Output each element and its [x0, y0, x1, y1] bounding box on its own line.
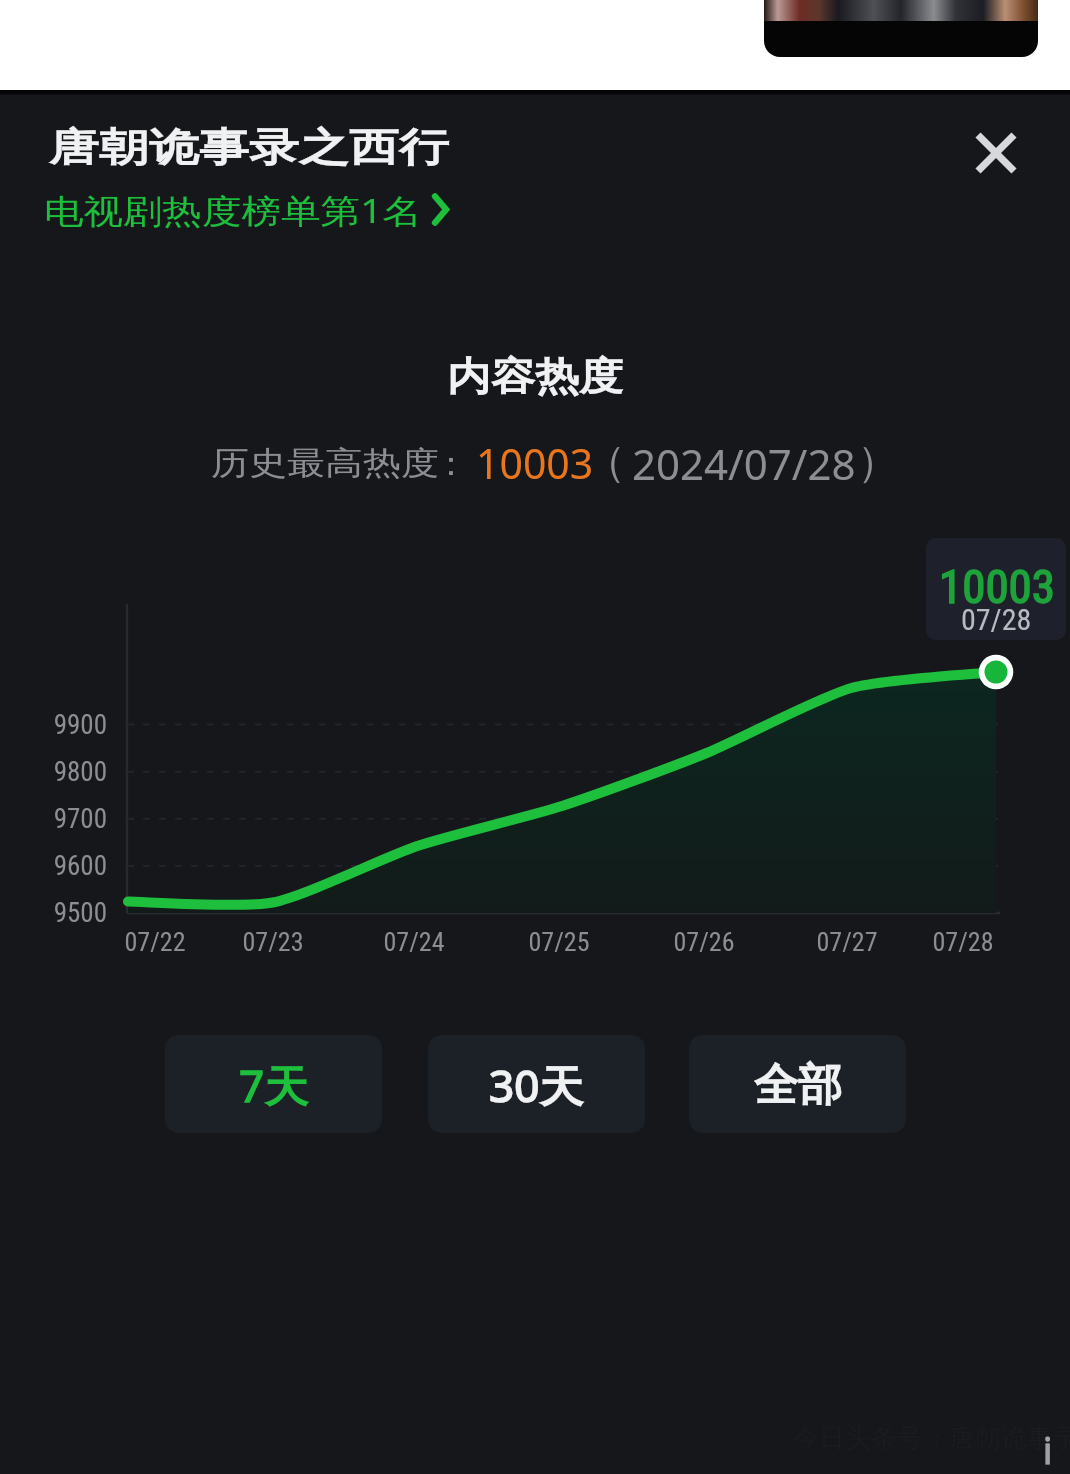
staticText: 7天 — [239, 1055, 309, 1115]
staticText: 07/23 — [213, 927, 333, 957]
staticText: 今日头条号：唐朝诡事录官方 — [793, 1422, 1070, 1455]
staticText: 9800 — [7, 756, 107, 788]
staticText: 历史最高热度 — [211, 443, 439, 484]
staticText: 07/24 — [354, 927, 474, 957]
staticText: 内容热度 — [447, 353, 623, 402]
staticText: 2024/07/28 — [632, 435, 856, 492]
button[interactable]: 全部 — [689, 1035, 906, 1133]
staticText: 9900 — [7, 709, 107, 741]
staticText: 30天 — [489, 1055, 584, 1115]
staticText: 07/26 — [644, 927, 764, 957]
staticText: 10003 — [939, 559, 1056, 614]
staticText: ： — [434, 442, 468, 485]
staticText: （ — [584, 436, 626, 489]
staticText: 电视剧热度榜单第1名 — [44, 188, 423, 234]
staticText: 07/28 — [961, 602, 1032, 637]
staticText: i — [1043, 1426, 1053, 1474]
button[interactable]: Close — [963, 120, 1029, 186]
staticText: ） — [857, 436, 899, 489]
staticText: 07/22 — [95, 927, 215, 957]
staticText: 07/25 — [499, 927, 619, 957]
staticText: 07/27 — [787, 927, 907, 957]
button[interactable]: 30天 — [428, 1035, 645, 1133]
staticText: 9600 — [7, 850, 107, 882]
button[interactable]: 10003 — [926, 538, 1066, 640]
staticText: 唐朝诡事录之西行 — [49, 123, 449, 173]
staticText: 9700 — [7, 803, 107, 835]
staticText: 07/28 — [903, 927, 1023, 957]
staticText: 9500 — [7, 897, 107, 929]
button[interactable]: 电视剧热度榜单第1名 — [38, 178, 463, 240]
staticText: 10003 — [476, 435, 594, 491]
staticText: 全部 — [754, 1058, 842, 1113]
button[interactable]: 7天 — [165, 1035, 382, 1133]
